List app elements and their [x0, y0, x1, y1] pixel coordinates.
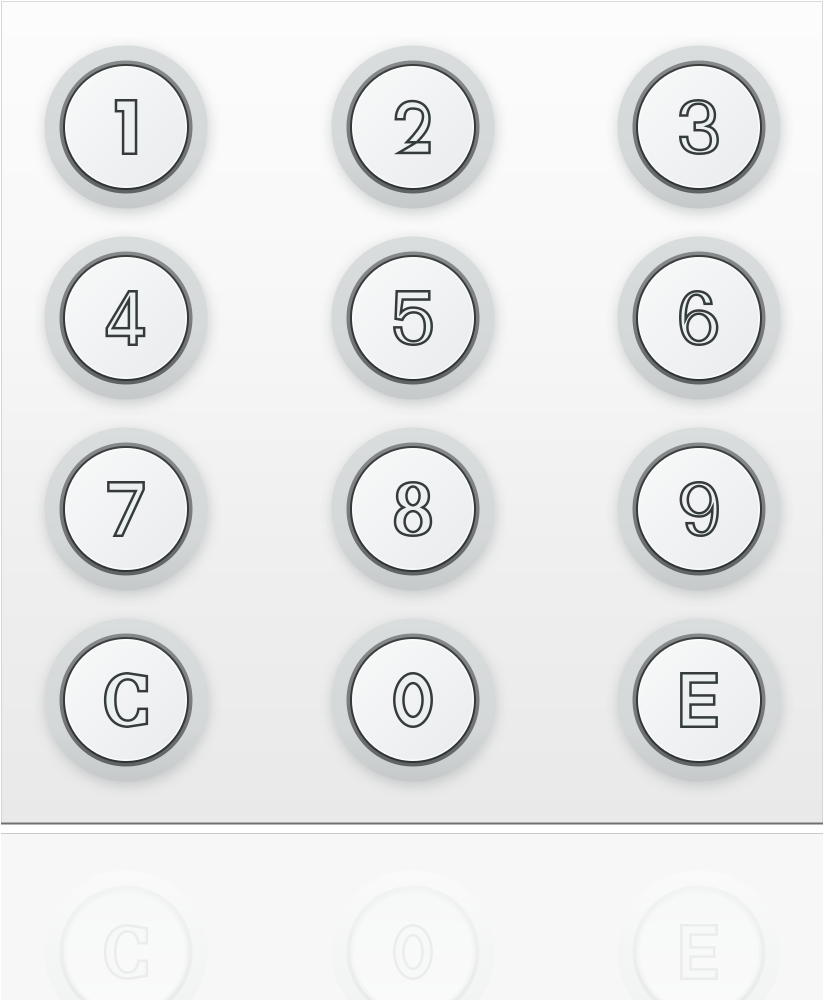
button[interactable]	[617, 45, 780, 208]
button[interactable]	[331, 45, 494, 208]
button[interactable]	[331, 618, 494, 781]
button[interactable]	[44, 45, 207, 208]
button[interactable]	[44, 427, 207, 590]
button[interactable]	[44, 618, 207, 781]
button[interactable]	[331, 427, 494, 590]
button[interactable]	[617, 236, 780, 399]
button[interactable]	[331, 236, 494, 399]
button[interactable]	[44, 236, 207, 399]
button[interactable]	[617, 618, 780, 781]
button[interactable]	[617, 427, 780, 590]
